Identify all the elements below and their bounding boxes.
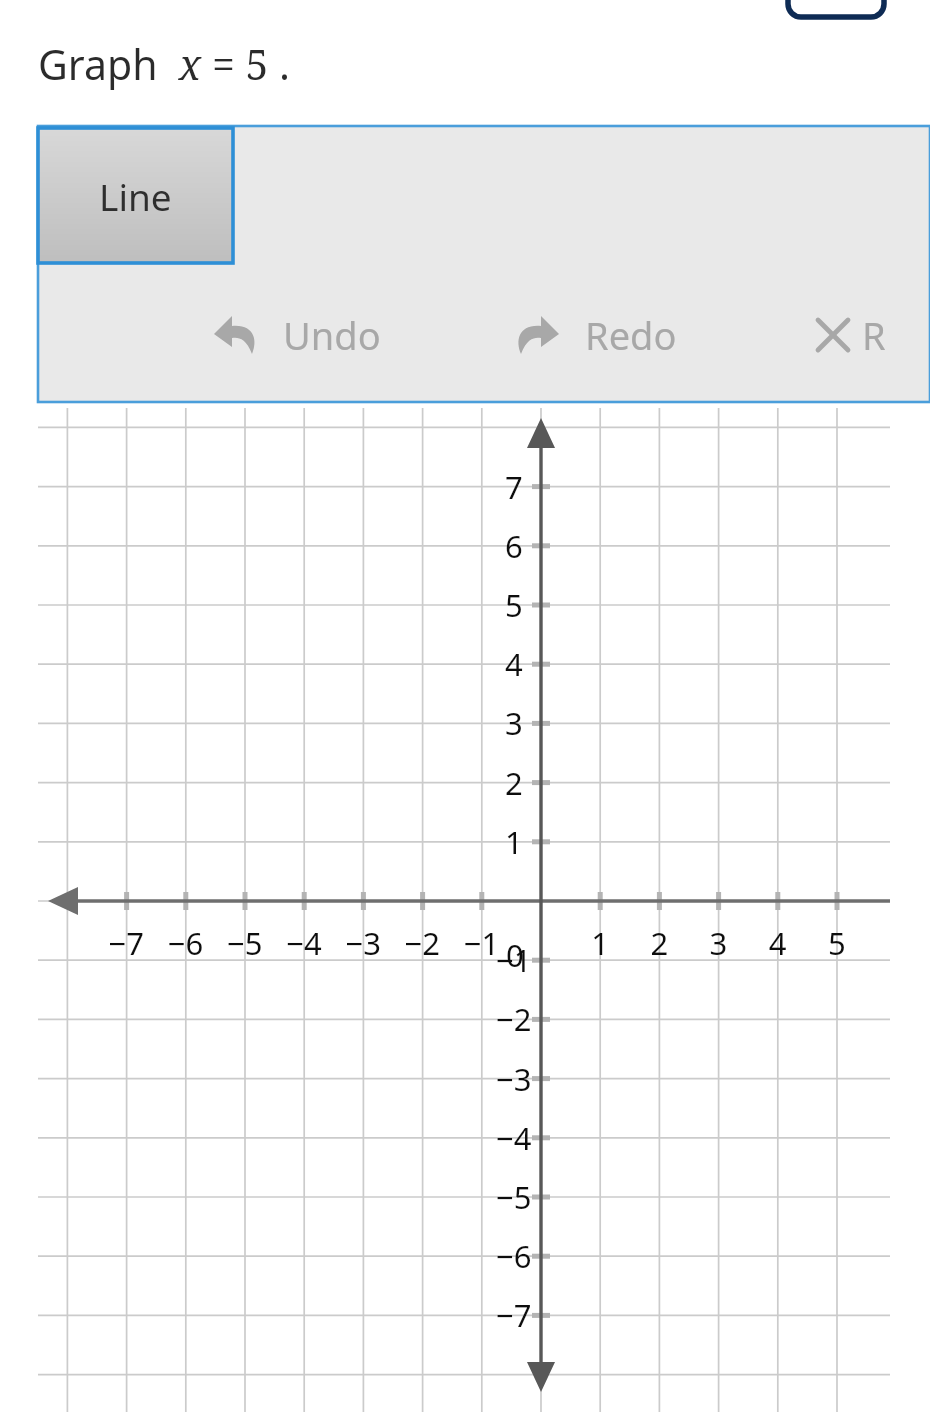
button[interactable]: Reset [810, 304, 930, 368]
button[interactable]: Menu [788, 0, 884, 17]
button[interactable]: Line tool [38, 128, 233, 263]
button[interactable]: Undo [208, 304, 413, 368]
button[interactable]: Redo [513, 304, 718, 368]
